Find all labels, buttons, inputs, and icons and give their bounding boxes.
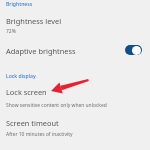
staticText: Lock screen <box>6 87 47 97</box>
button[interactable]: Adaptive brightness <box>0 43 150 57</box>
staticText: Adaptive brightness <box>6 46 76 56</box>
staticText: After 10 minutes of inactivity <box>6 131 73 138</box>
button[interactable]: Brightness level <box>0 15 150 35</box>
button[interactable]: Screen timeout <box>0 117 150 141</box>
staticText: Show sensitive content only when unlocke… <box>6 102 107 109</box>
button[interactable]: Adaptive brightness toggle <box>125 45 142 55</box>
button[interactable]: Lock screen <box>0 86 150 110</box>
staticText: Brightness <box>6 1 33 8</box>
staticText: Brightness level <box>6 16 62 26</box>
staticText: 72% <box>6 28 16 35</box>
staticText: Screen timeout <box>6 118 59 128</box>
staticText: Lock display <box>6 73 36 80</box>
